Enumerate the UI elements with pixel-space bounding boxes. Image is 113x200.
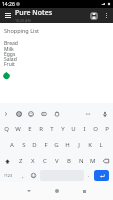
button[interactable]: Voice input	[99, 108, 111, 120]
staticText: Y	[61, 125, 65, 133]
button[interactable]: Stickers	[25, 108, 37, 120]
staticText: O	[93, 125, 98, 133]
button[interactable]: M	[87, 153, 99, 169]
staticText: U	[71, 125, 76, 133]
button[interactable]: O	[90, 121, 101, 137]
button[interactable]: P	[101, 121, 112, 137]
staticText: A	[10, 141, 14, 149]
staticText: T	[50, 125, 54, 133]
staticText: P	[105, 125, 109, 133]
staticText: M	[90, 157, 96, 165]
staticText: Pure Notes	[15, 8, 53, 18]
button[interactable]: Shift	[0, 153, 14, 169]
staticText: Shopping List	[4, 27, 40, 34]
staticText: K	[88, 141, 92, 149]
staticText: R	[39, 125, 43, 133]
button[interactable]: A	[6, 137, 18, 153]
button[interactable]: Emoji	[28, 170, 39, 181]
staticText: Q	[4, 125, 9, 133]
staticText: ,	[22, 172, 24, 180]
staticText: 10:26 AM	[15, 18, 31, 23]
button[interactable]: Recent apps	[78, 185, 90, 197]
button[interactable]: Z	[14, 153, 27, 169]
button[interactable]: G	[51, 137, 62, 153]
button[interactable]: B	[63, 153, 75, 169]
staticText: V	[55, 157, 59, 165]
button[interactable]: F	[40, 137, 51, 153]
staticText: J	[78, 141, 80, 149]
button[interactable]: I	[79, 121, 90, 137]
button[interactable]: R	[35, 121, 46, 137]
button[interactable]: W	[12, 121, 24, 137]
staticText: L	[99, 141, 103, 149]
staticText: C	[43, 157, 47, 165]
button[interactable]: Home	[51, 185, 63, 197]
button[interactable]: Symbols	[1, 169, 15, 182]
button[interactable]: L	[95, 137, 106, 153]
staticText: F	[44, 141, 48, 149]
button[interactable]: Back	[23, 185, 35, 197]
button[interactable]: Y	[57, 121, 68, 137]
button[interactable]: E	[24, 121, 35, 137]
button[interactable]: K	[84, 137, 95, 153]
staticText: Bread	[4, 40, 18, 47]
staticText: Salad	[4, 56, 17, 63]
button[interactable]: Q	[0, 121, 12, 137]
button[interactable]: GIF	[38, 108, 50, 120]
staticText: .	[88, 171, 90, 179]
staticText: E	[28, 125, 32, 133]
staticText: S	[22, 141, 26, 149]
button[interactable]: More options	[101, 10, 112, 21]
staticText: Milk	[4, 46, 14, 53]
button[interactable]: C	[39, 153, 51, 169]
button[interactable]: U	[68, 121, 79, 137]
button[interactable]: Comma	[17, 170, 29, 182]
button[interactable]: D	[29, 137, 40, 153]
button[interactable]: J	[73, 137, 84, 153]
staticText: Eggs	[4, 51, 16, 58]
button[interactable]: Save note	[88, 10, 99, 21]
button[interactable]: S	[18, 137, 29, 153]
button[interactable]: More tools	[82, 108, 94, 120]
button[interactable]: V	[51, 153, 63, 169]
button[interactable]: Expand toolbar	[0, 108, 12, 120]
button[interactable]: Clipboard	[51, 108, 63, 120]
button[interactable]: Enter	[94, 170, 109, 181]
button[interactable]: N	[75, 153, 87, 169]
staticText: I	[83, 125, 86, 133]
staticText: Z	[19, 157, 23, 165]
staticText: Fruit	[4, 61, 15, 68]
staticText: W	[15, 125, 21, 133]
button[interactable]: Navigation menu	[2, 10, 13, 21]
button[interactable]: X	[27, 153, 39, 169]
staticText: ?123	[4, 173, 13, 178]
button[interactable]: T	[46, 121, 57, 137]
button[interactable]: Backspace	[99, 153, 113, 169]
staticText: G	[54, 141, 59, 149]
staticText: 14:26	[2, 1, 15, 8]
button[interactable]: H	[62, 137, 73, 153]
button[interactable]: Settings	[13, 108, 25, 120]
staticText: D	[32, 141, 37, 149]
staticText: X	[31, 157, 35, 165]
button[interactable]: Period	[84, 170, 94, 180]
staticText: H	[65, 141, 70, 149]
staticText: N	[79, 157, 84, 165]
staticText: B	[67, 157, 71, 165]
